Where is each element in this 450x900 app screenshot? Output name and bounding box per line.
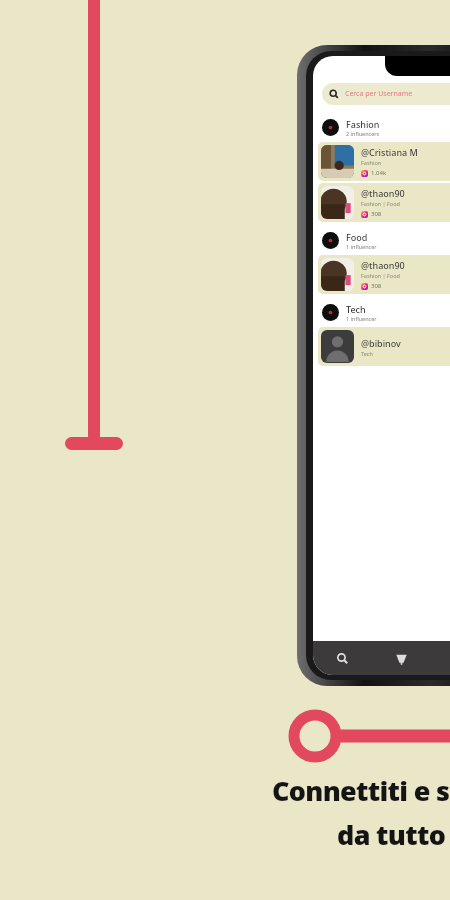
staticText: Tech — [361, 350, 373, 357]
staticText: Fashion — [361, 159, 382, 166]
button[interactable]: Cart — [372, 641, 431, 675]
staticText: 308 — [371, 210, 382, 218]
staticText: 1 influencer — [346, 315, 377, 322]
button[interactable]: Search — [313, 641, 372, 675]
staticText: Fashion — [346, 118, 380, 130]
staticText: Fashion | Food — [361, 272, 400, 279]
button[interactable]: @thaon90 — [318, 255, 450, 294]
staticText: Tech — [346, 303, 366, 315]
staticText: @bibinov — [361, 337, 401, 349]
staticText: 1 influencer — [346, 243, 377, 250]
button[interactable]: @thaon90 — [318, 183, 450, 222]
staticText: @thaon90 — [361, 259, 405, 271]
staticText: da tutto il — [337, 816, 450, 853]
button[interactable]: Fashion — [313, 113, 450, 141]
staticText: Fashion | Food — [361, 200, 400, 207]
staticText: @Cristiana M — [361, 146, 418, 158]
button[interactable]: Cerca per Username — [322, 83, 450, 105]
staticText: Cerca per Username — [345, 89, 413, 99]
button[interactable]: Food — [313, 226, 450, 254]
staticText: 2 influencers — [346, 130, 380, 137]
staticText: @thaon90 — [361, 187, 405, 199]
staticText: Food — [346, 231, 368, 243]
button[interactable]: Tech — [313, 298, 450, 326]
button[interactable]: @Cristiana M — [318, 142, 450, 181]
staticText: 1.04k — [371, 169, 387, 177]
staticText: Connettiti e sco — [272, 772, 450, 809]
button[interactable]: @bibinov — [318, 327, 450, 366]
staticText: 308 — [371, 282, 382, 290]
